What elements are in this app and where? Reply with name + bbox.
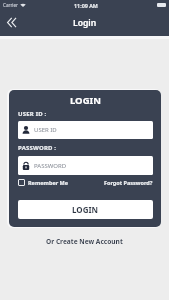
button[interactable]: Or Create New Account (46, 237, 123, 246)
button[interactable]: USER ID (18, 121, 153, 139)
staticText: Login (73, 17, 97, 29)
staticText: PASSWORD (34, 162, 67, 170)
staticText: Remember Me (28, 179, 69, 186)
staticText: LOGIN (70, 94, 101, 107)
staticText: PASSWORD : (18, 144, 57, 152)
staticText: USER ID : (18, 110, 47, 118)
staticText: 11:09 AM (74, 2, 98, 9)
staticText: Carrier (3, 2, 18, 8)
button[interactable]: LOGIN (18, 200, 153, 219)
staticText: USER ID (34, 126, 57, 134)
button[interactable]: Forgot Password? (104, 179, 153, 186)
button[interactable]: Remember Me (18, 179, 69, 186)
staticText: LOGIN (72, 204, 99, 215)
button[interactable]: PASSWORD (18, 156, 153, 175)
button[interactable]: Back (1, 12, 21, 32)
